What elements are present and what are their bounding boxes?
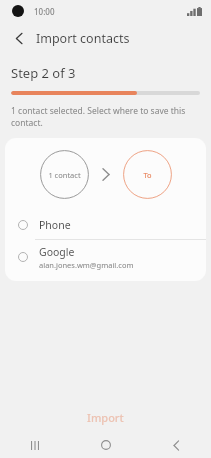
button[interactable]: Recents (0, 432, 71, 458)
staticText: alan.jones.wm@gmail.com (39, 260, 134, 270)
button[interactable]: Google (5, 240, 206, 274)
button[interactable]: Back (141, 432, 211, 458)
staticText: Import (87, 410, 124, 425)
staticText: Step 2 of 3 (11, 64, 76, 82)
button[interactable]: To (123, 150, 172, 199)
staticText: Google (39, 245, 75, 259)
button[interactable]: Phone (5, 210, 206, 239)
button[interactable]: 1 contact (40, 150, 89, 199)
staticText: 10:00 (34, 6, 55, 17)
staticText: Import contacts (36, 30, 130, 47)
staticText: Phone (39, 218, 71, 232)
button[interactable]: Import (0, 402, 211, 432)
staticText: 1 contact (48, 170, 81, 180)
staticText: To (143, 170, 152, 180)
button[interactable]: Home (71, 432, 141, 458)
button[interactable]: Back (6, 25, 32, 51)
staticText: 1 contact selected. Select where to save… (11, 105, 200, 129)
